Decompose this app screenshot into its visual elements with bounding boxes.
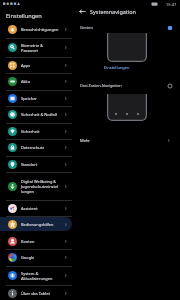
button[interactable]: Drei-Tasten-Navigation [78,81,178,90]
button[interactable]: Speicher [0,90,72,106]
button[interactable]: Datenschutz [0,139,72,156]
button[interactable]: Sicherheit [0,123,72,139]
staticText: Google [21,255,63,260]
staticText: Über das Tablet [21,291,63,296]
staticText: Drei-Tasten-Navigation [80,83,122,88]
staticText: Konten [21,239,63,244]
button[interactable]: Standort [0,156,72,172]
button[interactable]: Mehr [78,133,178,147]
staticText: Systemnavigation [90,8,136,15]
button[interactable]: Bedienungshilfen [0,216,72,233]
staticText: Einstellungen [104,65,130,70]
staticText: Biometrie & Passwort [21,43,63,53]
staticText: 15:47 [166,2,177,7]
staticText: Standort [21,162,63,167]
staticText: Sicherheit [21,129,63,134]
button[interactable]: Sicherheit & Notfall [0,106,72,123]
staticText: System & Aktualisierungen [21,271,63,281]
button[interactable]: System & Aktualisierungen [0,266,72,285]
button[interactable]: Digital Wellbeing & Jugendschutzeinstel … [0,172,72,200]
button[interactable]: Konten [0,233,72,249]
button[interactable]: Apps [0,57,72,73]
staticText: Speicher [21,96,63,101]
staticText: Digital Wellbeing & Jugendschutzeinstel … [21,179,63,194]
button[interactable]: Einstellungen [104,65,130,70]
button[interactable]: Back [76,5,89,18]
button[interactable]: Assistent [0,200,72,216]
button[interactable]: Über das Tablet [0,285,72,300]
button[interactable]: Google [0,249,72,266]
button[interactable]: Biometrie & Passwort [0,38,72,57]
staticText: Gesten [80,25,93,30]
button[interactable]: Akku [0,73,72,90]
button[interactable]: Gesten [78,23,178,32]
staticText: Bedienungshilfen [21,222,63,227]
staticText: Datenschutz [21,145,63,150]
button[interactable]: Drei-Tasten preview [107,94,147,121]
button[interactable]: Gesten preview [107,33,147,62]
staticText: Assistent [21,206,63,211]
staticText: Mehr [80,138,91,143]
staticText: Apps [21,63,63,68]
staticText: Benachrichtigungen [21,27,63,32]
staticText: Akku [21,79,63,84]
staticText: Einstellungen [6,12,42,20]
staticText: Sicherheit & Notfall [21,112,63,117]
button[interactable]: Benachrichtigungen [0,21,72,38]
